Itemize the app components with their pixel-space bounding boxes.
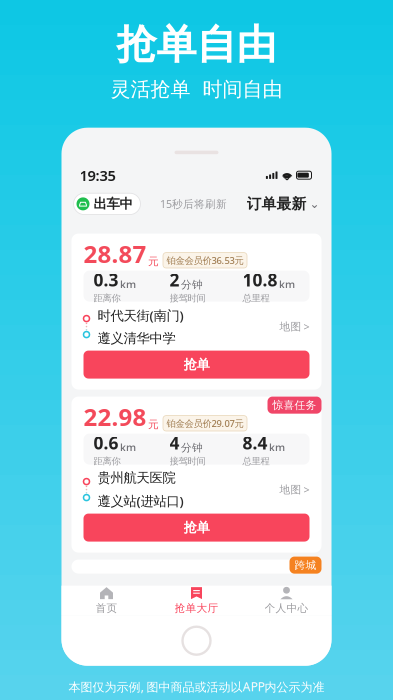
staticText: 0.3 — [93, 268, 118, 291]
staticText: 遵义站(进站口) — [97, 492, 183, 510]
button[interactable]: 首页 — [61, 582, 151, 620]
staticText: 抢单 — [183, 356, 209, 373]
button[interactable]: 抢单 — [83, 351, 309, 379]
staticText: 抢单自由 — [116, 20, 276, 69]
button[interactable]: 抢单大厅 — [151, 582, 241, 620]
staticText: 4 — [169, 431, 179, 454]
staticText: 地图 — [279, 320, 301, 333]
staticText: 10.8 — [242, 268, 277, 291]
staticText: 19:35 — [79, 165, 115, 185]
staticText: 跨城 — [294, 559, 316, 572]
staticText: 0.6 — [93, 431, 118, 454]
staticText: ⌄ — [309, 197, 319, 211]
staticText: > — [303, 482, 309, 497]
staticText: 出车中 — [93, 196, 132, 212]
staticText: 时代天街(南门) — [97, 306, 183, 324]
staticText: 分钟 — [181, 278, 203, 291]
button[interactable]: 个人中心 — [241, 582, 331, 620]
staticText: 本图仅为示例, 图中商品或活动以APP内公示为准 — [68, 679, 324, 695]
staticText: 距离你 — [93, 292, 120, 304]
staticText: 15秒后将刷新 — [160, 197, 227, 211]
staticText: 2 — [169, 268, 179, 291]
staticText: 总里程 — [242, 455, 269, 467]
staticText: 抢单大厅 — [174, 602, 218, 615]
staticText: 首页 — [95, 602, 117, 615]
staticText: 距离你 — [93, 455, 120, 467]
staticText: 总里程 — [242, 292, 269, 304]
staticText: 元 — [148, 255, 159, 268]
staticText: 分钟 — [181, 441, 203, 454]
staticText: 订单最新 — [246, 195, 306, 213]
staticText: 抢单 — [183, 519, 209, 536]
staticText: 个人中心 — [264, 602, 308, 615]
button[interactable]: 抢单 — [83, 514, 309, 542]
button[interactable]: 地图 — [279, 482, 309, 497]
button[interactable]: 订单最新 — [246, 195, 319, 213]
staticText: 贵州航天医院 — [97, 469, 175, 486]
staticText: 铂金会员价36.53元 — [166, 254, 243, 266]
staticText: 灵活抢单 时间自由 — [110, 77, 282, 102]
staticText: 铂金会员价29.07元 — [166, 417, 243, 429]
staticText: 22.98 — [83, 401, 146, 432]
button[interactable]: 地图 — [279, 319, 309, 334]
staticText: 28.87 — [83, 238, 146, 269]
staticText: 惊喜任务 — [272, 399, 316, 412]
staticText: 接驾时间 — [169, 292, 205, 304]
staticText: km — [120, 440, 136, 454]
staticText: 8.4 — [242, 431, 267, 454]
staticText: km — [279, 277, 295, 291]
staticText: > — [303, 319, 309, 334]
staticText: km — [269, 440, 285, 454]
staticText: km — [120, 277, 136, 291]
staticText: 元 — [148, 418, 159, 431]
staticText: 接驾时间 — [169, 455, 205, 467]
staticText: 遵义清华中学 — [97, 330, 175, 347]
staticText: 地图 — [279, 483, 301, 496]
button[interactable]: 出车中 — [73, 193, 140, 215]
